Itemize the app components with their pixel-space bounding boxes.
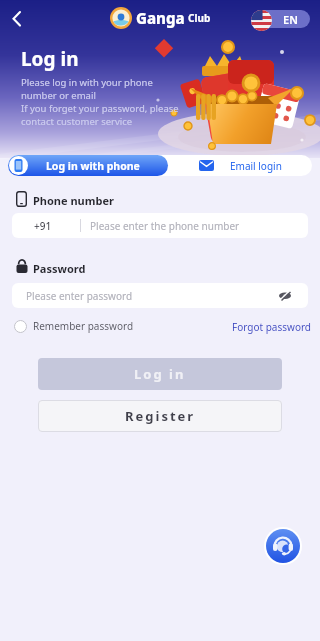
button[interactable]: Log in with phone	[8, 155, 168, 176]
staticText: Remember password	[33, 319, 134, 333]
staticText: Phone number	[33, 193, 114, 208]
button[interactable]: Register	[38, 400, 282, 432]
button[interactable]: EN	[252, 10, 310, 28]
button[interactable]: Log in	[38, 358, 282, 390]
staticText: Email login	[230, 159, 282, 173]
staticText: Log in	[21, 46, 79, 72]
button[interactable]	[6, 6, 32, 32]
button[interactable]: Email login	[168, 155, 312, 176]
button[interactable]: Remember password	[14, 318, 134, 334]
staticText: Ganga	[136, 8, 185, 28]
staticText: Please log in with your phone number or …	[21, 76, 179, 128]
staticText: Register	[125, 407, 196, 425]
staticText: EN	[283, 12, 298, 27]
button[interactable]	[264, 527, 302, 565]
staticText: Please enter the phone number	[90, 219, 240, 233]
staticText: Password	[33, 261, 86, 276]
staticText: Club	[188, 11, 211, 25]
staticText: Log in	[134, 365, 186, 383]
staticText: Log in with phone	[46, 159, 140, 173]
staticText: Please enter password	[26, 289, 133, 303]
button[interactable]: +91	[12, 213, 308, 238]
button[interactable]: Forgot password	[232, 320, 312, 334]
staticText: +91	[34, 219, 52, 233]
button[interactable]: Please enter password	[12, 283, 308, 308]
